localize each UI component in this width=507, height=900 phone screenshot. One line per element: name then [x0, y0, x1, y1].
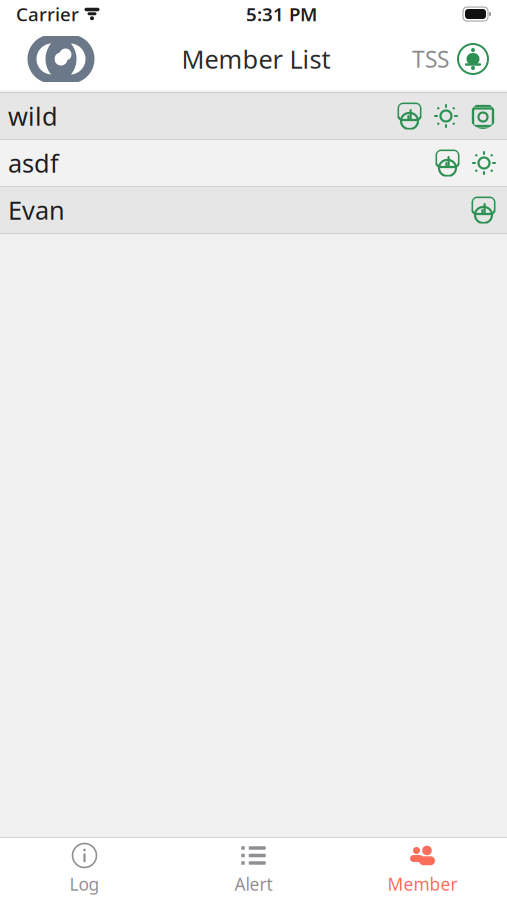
button[interactable]: Alert	[169, 834, 338, 900]
staticText: asdf	[8, 146, 59, 180]
button[interactable]: Evan	[0, 187, 507, 234]
button[interactable]: Home	[0, 30, 100, 88]
staticText: TSS	[412, 44, 449, 74]
staticText: Alert	[234, 872, 272, 895]
staticText: Member List	[181, 42, 330, 76]
button[interactable]: TSS Alerts	[412, 37, 507, 81]
staticText: 5:31 PM	[246, 2, 317, 26]
button[interactable]: asdf	[0, 140, 507, 187]
button[interactable]: Member	[338, 834, 507, 900]
staticText: Member	[387, 872, 457, 895]
staticText: Carrier	[16, 2, 79, 26]
staticText: wild	[8, 99, 58, 133]
button[interactable]: wild	[0, 93, 507, 140]
button[interactable]: Log	[0, 834, 169, 900]
staticText: Evan	[8, 193, 65, 227]
staticText: Log	[69, 872, 99, 895]
